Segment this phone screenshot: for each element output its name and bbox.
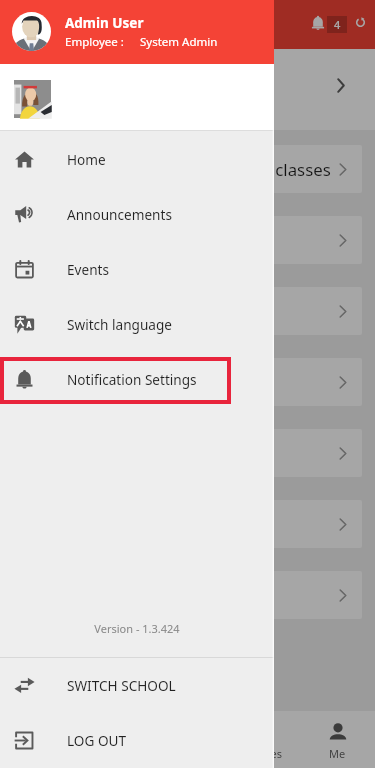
- staticText: Classes: [244, 746, 282, 761]
- button[interactable]: 4: [327, 16, 347, 33]
- button[interactable]: Refresh: [355, 17, 366, 29]
- button[interactable]: No classes: [12, 145, 362, 193]
- staticText: Admin User: [65, 14, 144, 32]
- button[interactable]: Home: [0, 711, 75, 768]
- staticText: No classes: [248, 158, 331, 181]
- button[interactable]: [12, 216, 362, 264]
- button[interactable]: [0, 357, 231, 404]
- staticText: Events: [67, 260, 109, 279]
- button[interactable]: Home: [0, 132, 274, 187]
- staticText: 4: [334, 17, 341, 32]
- staticText: System Admin: [140, 34, 218, 50]
- staticText: Home: [67, 150, 106, 169]
- button[interactable]: Events: [0, 242, 274, 297]
- button[interactable]: [12, 287, 362, 335]
- button[interactable]: SWITCH SCHOOL: [0, 658, 274, 713]
- staticText: SWITCH SCHOOL: [67, 676, 176, 695]
- staticText: Announcements: [67, 205, 172, 224]
- button[interactable]: [12, 429, 362, 477]
- staticText: Home: [22, 746, 54, 761]
- button[interactable]: Feed: [75, 711, 150, 768]
- button[interactable]: Switch language: [0, 297, 274, 352]
- button[interactable]: Me: [300, 711, 375, 768]
- button[interactable]: [12, 500, 362, 548]
- button[interactable]: Notifications: [310, 15, 326, 31]
- button[interactable]: [0, 49, 375, 130]
- staticText: Switch language: [67, 315, 172, 334]
- button[interactable]: LOG OUT: [0, 713, 274, 768]
- staticText: Notification Settings: [67, 370, 197, 389]
- button[interactable]: [12, 358, 362, 406]
- button[interactable]: Classes: [225, 711, 300, 768]
- button[interactable]: [12, 571, 362, 619]
- button[interactable]: Profile photo: [14, 80, 51, 118]
- staticText: Employee :: [65, 34, 124, 50]
- staticText: Me: [329, 746, 346, 761]
- staticText: Version - 1.3.424: [0, 621, 274, 636]
- button[interactable]: Announcements: [0, 187, 274, 242]
- staticText: LOG OUT: [67, 731, 127, 750]
